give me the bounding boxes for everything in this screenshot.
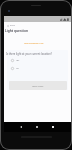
staticText: Submit Answer — [32, 85, 44, 87]
button[interactable]: Submit Answer — [9, 81, 67, 90]
staticText: Yes — [16, 59, 20, 62]
staticText: Time remaining 01:58 — [24, 42, 44, 45]
staticText: Back — [10, 24, 15, 27]
staticText: No — [16, 67, 19, 70]
button[interactable]: Yes — [11, 59, 20, 62]
button[interactable]: Recents — [51, 125, 55, 129]
staticText: Is there light at your current location? — [6, 52, 52, 56]
button[interactable]: No — [11, 67, 19, 70]
button[interactable]: Back — [7, 24, 15, 27]
button[interactable]: Back — [19, 125, 23, 129]
staticText: Light question — [5, 29, 29, 33]
button[interactable]: Home — [35, 125, 39, 129]
